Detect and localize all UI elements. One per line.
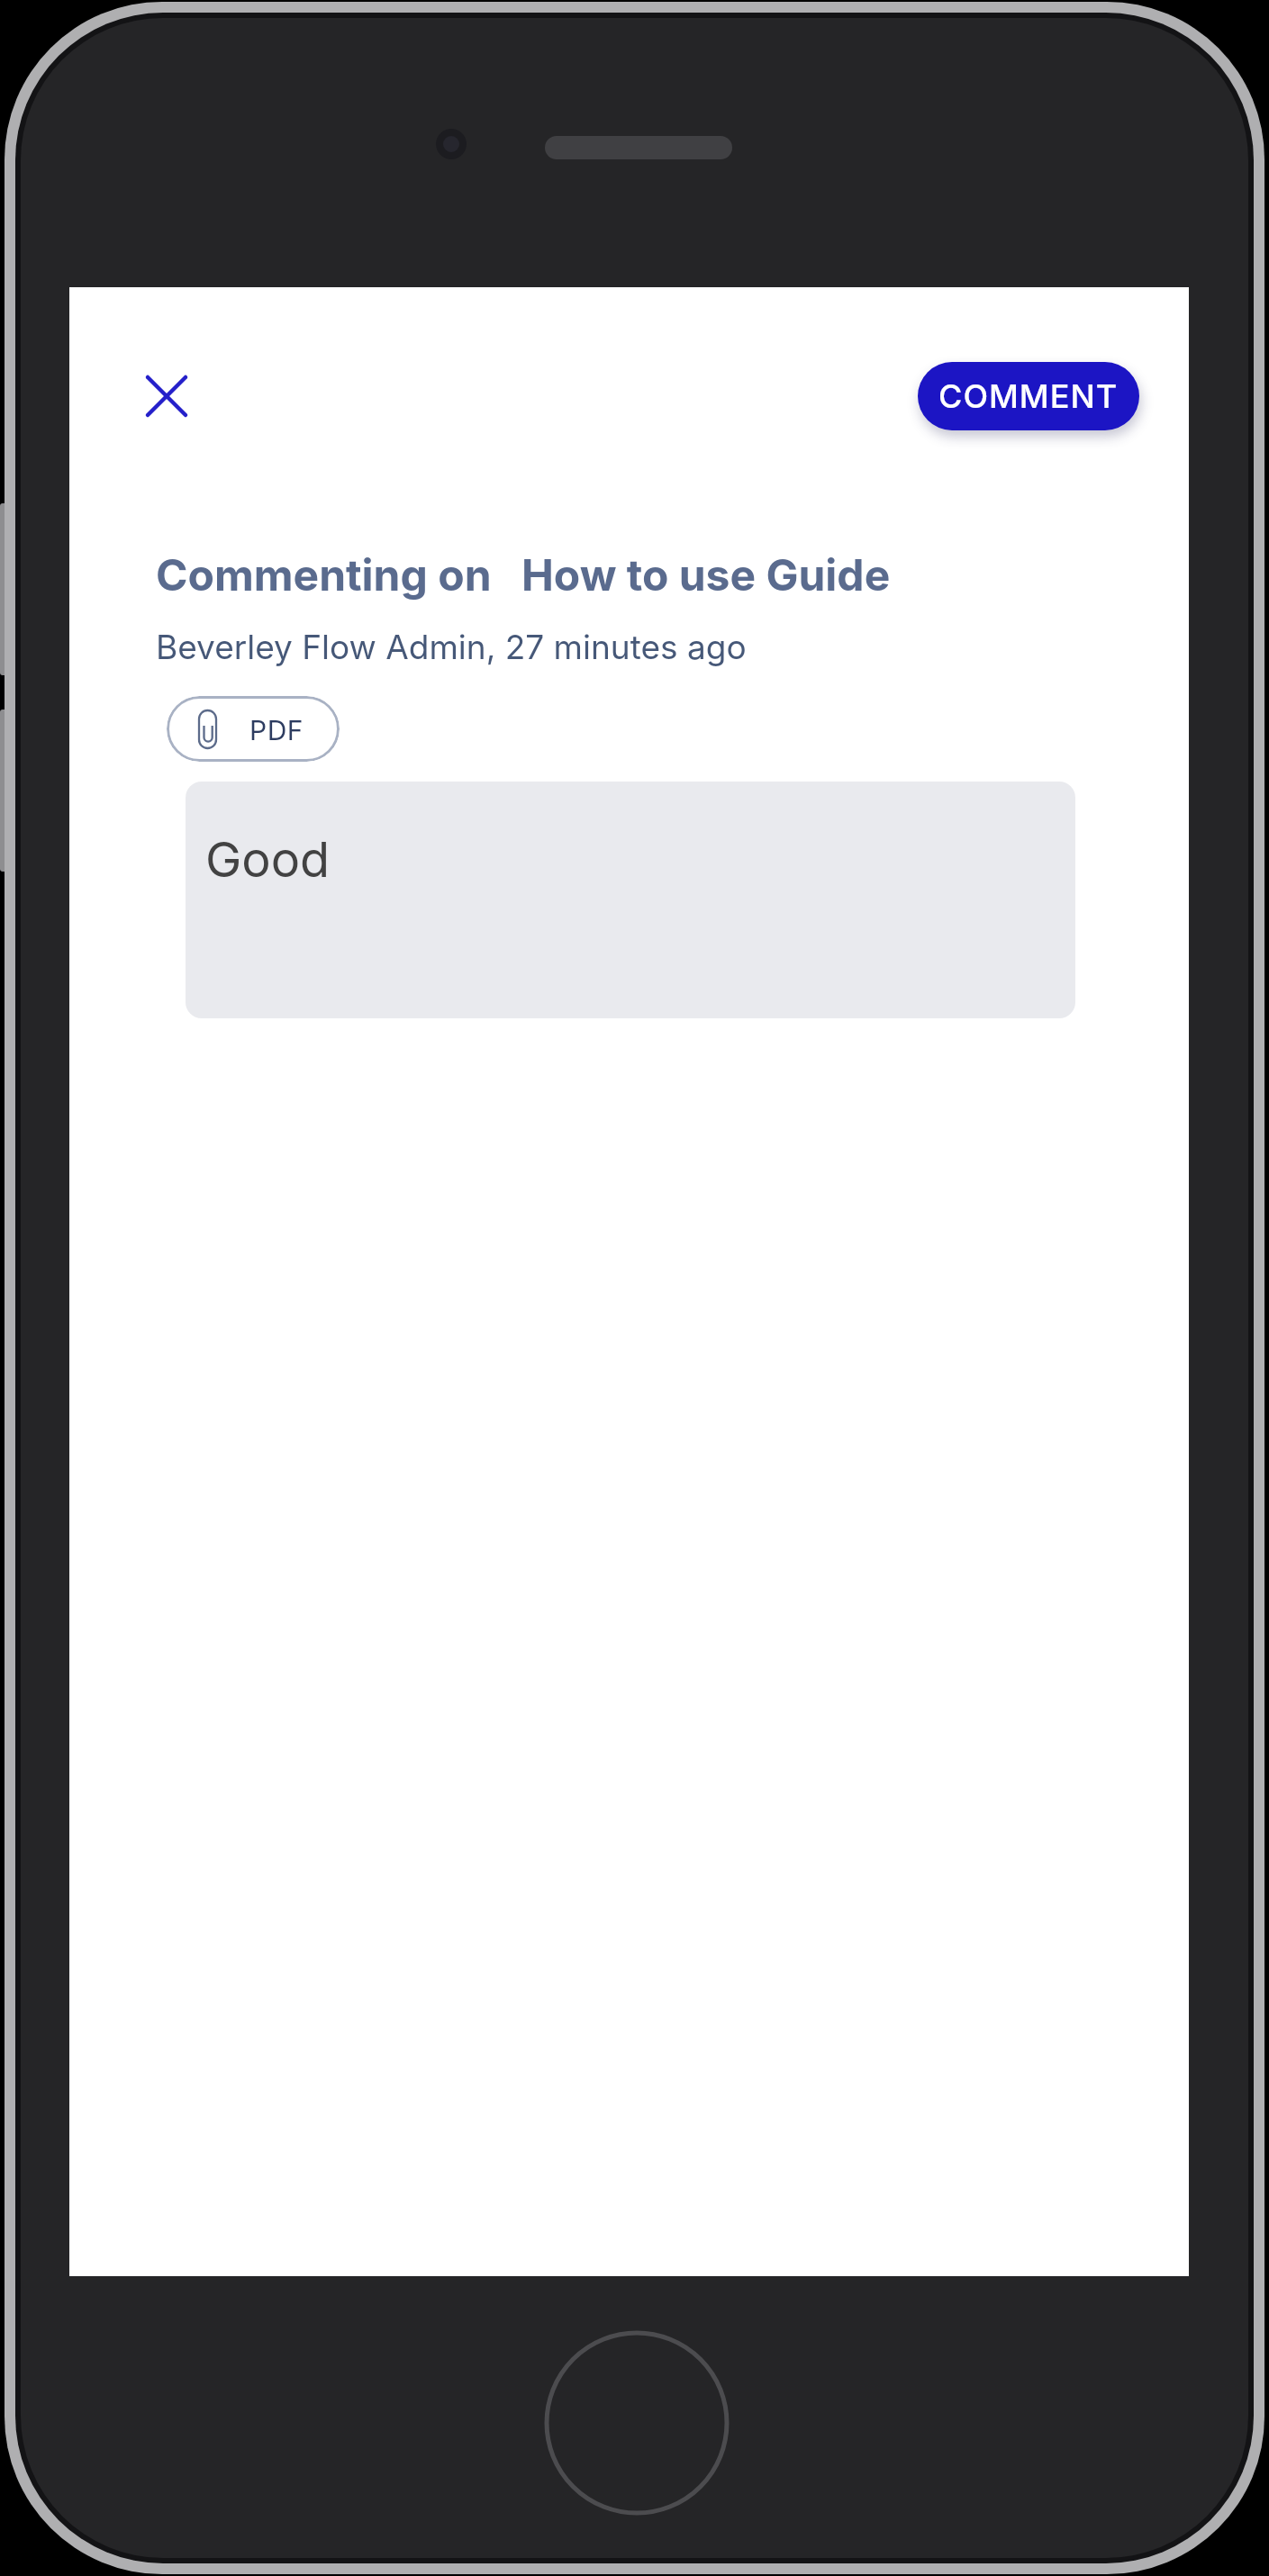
staticText: Commenting on bbox=[156, 548, 492, 601]
staticText: Beverley Flow Admin, 27 minutes ago bbox=[156, 627, 747, 667]
staticText: COMMENT bbox=[938, 376, 1119, 416]
button[interactable]: PDF bbox=[167, 696, 340, 762]
staticText: Good bbox=[205, 830, 331, 889]
button[interactable] bbox=[135, 365, 198, 428]
button[interactable]: COMMENT bbox=[918, 362, 1139, 430]
staticText: PDF bbox=[249, 714, 304, 746]
staticText: How to use Guide bbox=[521, 548, 891, 601]
button[interactable]: Good bbox=[186, 782, 1075, 1018]
